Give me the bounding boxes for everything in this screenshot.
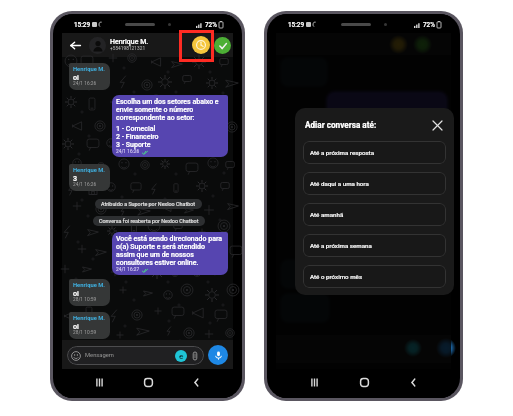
- staticText: 24/1 16:26: [73, 182, 97, 188]
- button[interactable]: Home: [137, 371, 159, 393]
- button[interactable]: Até a próxima resposta: [303, 141, 446, 164]
- button[interactable]: Back: [402, 371, 424, 393]
- button[interactable]: Record voice message: [208, 345, 228, 365]
- staticText: Escolha um dos setores abaixo e envie so…: [116, 98, 224, 122]
- staticText: Adiar conversa até:: [305, 120, 377, 130]
- button[interactable]: Recent apps: [88, 371, 110, 393]
- button[interactable]: Henrique M.: [69, 312, 110, 339]
- staticText: Até daqui a uma hora: [310, 180, 369, 187]
- button[interactable]: Henrique M.: [69, 63, 110, 90]
- button[interactable]: Close: [430, 118, 444, 132]
- staticText: Henrique M.: [73, 66, 105, 73]
- button[interactable]: Escolha um dos setores abaixo e envie so…: [112, 95, 228, 157]
- staticText: Até a próxima semana: [310, 242, 372, 249]
- staticText: 15:29: [288, 21, 304, 28]
- button[interactable]: Home: [353, 371, 375, 393]
- staticText: 28/1 10:59: [73, 297, 97, 303]
- staticText: Conversa foi reaberta por Nexloo Chatbot: [99, 218, 199, 224]
- staticText: 28/1 10:59: [73, 330, 97, 336]
- staticText: Henrique M.: [73, 315, 105, 322]
- staticText: 2 - Financeiro: [116, 133, 159, 141]
- staticText: 3 - Suporte: [116, 141, 151, 149]
- staticText: Até o próximo mês: [310, 273, 363, 280]
- staticText: Henrique M.: [110, 38, 149, 46]
- staticText: Mensagem: [85, 352, 114, 359]
- staticText: +554198121321: [110, 46, 146, 52]
- button[interactable]: Atribuido a Suporte por Nexloo Chatbot: [95, 199, 202, 209]
- button[interactable]: Você está sendo direcionado para o(a) Su…: [112, 232, 228, 275]
- button[interactable]: Henrique M.: [69, 279, 110, 306]
- staticText: 15:29: [74, 21, 90, 28]
- button[interactable]: Até o próximo mês: [303, 265, 446, 288]
- staticText: 24/1 16:27: [116, 267, 140, 273]
- button[interactable]: Mensagem: [67, 346, 204, 365]
- button[interactable]: Recent apps: [303, 371, 325, 393]
- staticText: 72%: [205, 21, 217, 28]
- staticText: Atribuido a Suporte por Nexloo Chatbot: [101, 201, 196, 207]
- staticText: Até amanhã: [310, 211, 344, 218]
- button[interactable]: Back: [185, 371, 207, 393]
- staticText: Henrique M.: [73, 167, 105, 174]
- staticText: Você está sendo direcionado para o(a) Su…: [116, 235, 224, 267]
- staticText: 1 - Comecial: [116, 125, 156, 133]
- staticText: oi: [73, 73, 79, 81]
- button[interactable]: Back: [67, 37, 84, 54]
- staticText: 72%: [423, 21, 435, 28]
- staticText: Até a próxima resposta: [310, 149, 375, 156]
- button[interactable]: Snooze conversation: [192, 36, 210, 54]
- staticText: oi: [73, 289, 79, 297]
- staticText: 24/1 16:26: [73, 81, 97, 87]
- button[interactable]: Até daqui a uma hora: [303, 172, 446, 195]
- button[interactable]: Henrique M.: [69, 164, 110, 191]
- staticText: 3: [73, 174, 78, 182]
- staticText: e: [179, 352, 184, 361]
- staticText: Henrique M.: [73, 282, 105, 289]
- button[interactable]: Até a próxima semana: [303, 234, 446, 257]
- button[interactable]: Resolve conversation: [214, 37, 231, 54]
- button[interactable]: Até amanhã: [303, 203, 446, 226]
- button[interactable]: Conversa foi reaberta por Nexloo Chatbot: [93, 216, 205, 226]
- staticText: 24/1 16:26: [116, 149, 140, 155]
- staticText: oi: [73, 322, 79, 330]
